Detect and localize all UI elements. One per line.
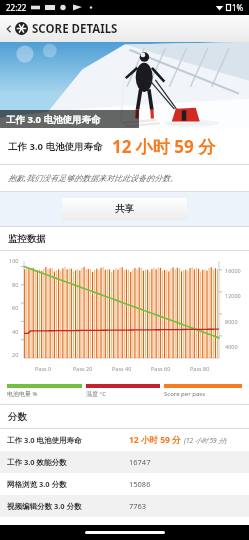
button[interactable]: 工作 3.0 电池使用寿命 bbox=[0, 429, 249, 451]
staticText: 7763 bbox=[129, 501, 147, 511]
staticText: 共享 bbox=[115, 203, 134, 215]
staticText: 12000 bbox=[225, 292, 241, 299]
staticText: 12 小时 59 分 bbox=[112, 135, 216, 158]
staticText: 分数 bbox=[8, 411, 27, 423]
staticText: 15086 bbox=[129, 479, 151, 489]
staticText: Pass 20 bbox=[73, 365, 93, 372]
staticText: 网格浏览 3.0 分数 bbox=[7, 479, 67, 489]
staticText: 8000 bbox=[225, 318, 238, 325]
staticText: 工作 3.0 电池使用寿命 bbox=[7, 435, 82, 445]
staticText: Score per pass bbox=[164, 390, 206, 398]
staticText: 40 bbox=[12, 328, 19, 335]
staticText: 工作 3.0 电池使用寿命 bbox=[8, 140, 103, 153]
button[interactable]: Back bbox=[2, 17, 15, 41]
button[interactable]: 共享 bbox=[62, 198, 187, 220]
staticText: SCORE DETAILS bbox=[32, 21, 118, 37]
staticText: (12 小时 59 分) bbox=[184, 436, 227, 445]
staticText: 温度 °C bbox=[86, 390, 106, 398]
staticText: Pass 40 bbox=[112, 365, 132, 372]
staticText: 监控数据 bbox=[8, 233, 46, 245]
staticText: 1% bbox=[232, 2, 244, 13]
staticText: 工作 3.0 效能分数 bbox=[7, 457, 67, 467]
button[interactable]: 工作 3.0 效能分数 bbox=[0, 451, 249, 473]
staticText: 80 bbox=[12, 281, 19, 288]
staticText: 60 bbox=[12, 304, 19, 311]
staticText: 视频编辑分数 3.0 分数 bbox=[7, 501, 82, 511]
staticText: Pass 60 bbox=[151, 365, 171, 372]
staticText: 工作 3.0 电池使用寿命 bbox=[6, 113, 101, 126]
staticText: 抱歉,我们没有足够的数据来对比此设备的分数。 bbox=[8, 172, 179, 183]
staticText: 22:22 bbox=[6, 2, 27, 13]
staticText: Pass 0 bbox=[35, 365, 52, 372]
staticText: Pass 80 bbox=[190, 365, 210, 372]
staticText: 20 bbox=[12, 351, 19, 358]
staticText: 4000 bbox=[225, 343, 238, 350]
button[interactable]: 视频编辑分数 3.0 分数 bbox=[0, 495, 249, 517]
staticText: 电池电量 % bbox=[7, 390, 38, 398]
staticText: 100 bbox=[9, 257, 19, 264]
staticText: 12 小时 59 分 bbox=[129, 434, 181, 446]
staticText: 16000 bbox=[225, 267, 241, 274]
button[interactable]: 网格浏览 3.0 分数 bbox=[0, 473, 249, 495]
staticText: 16747 bbox=[129, 457, 151, 467]
